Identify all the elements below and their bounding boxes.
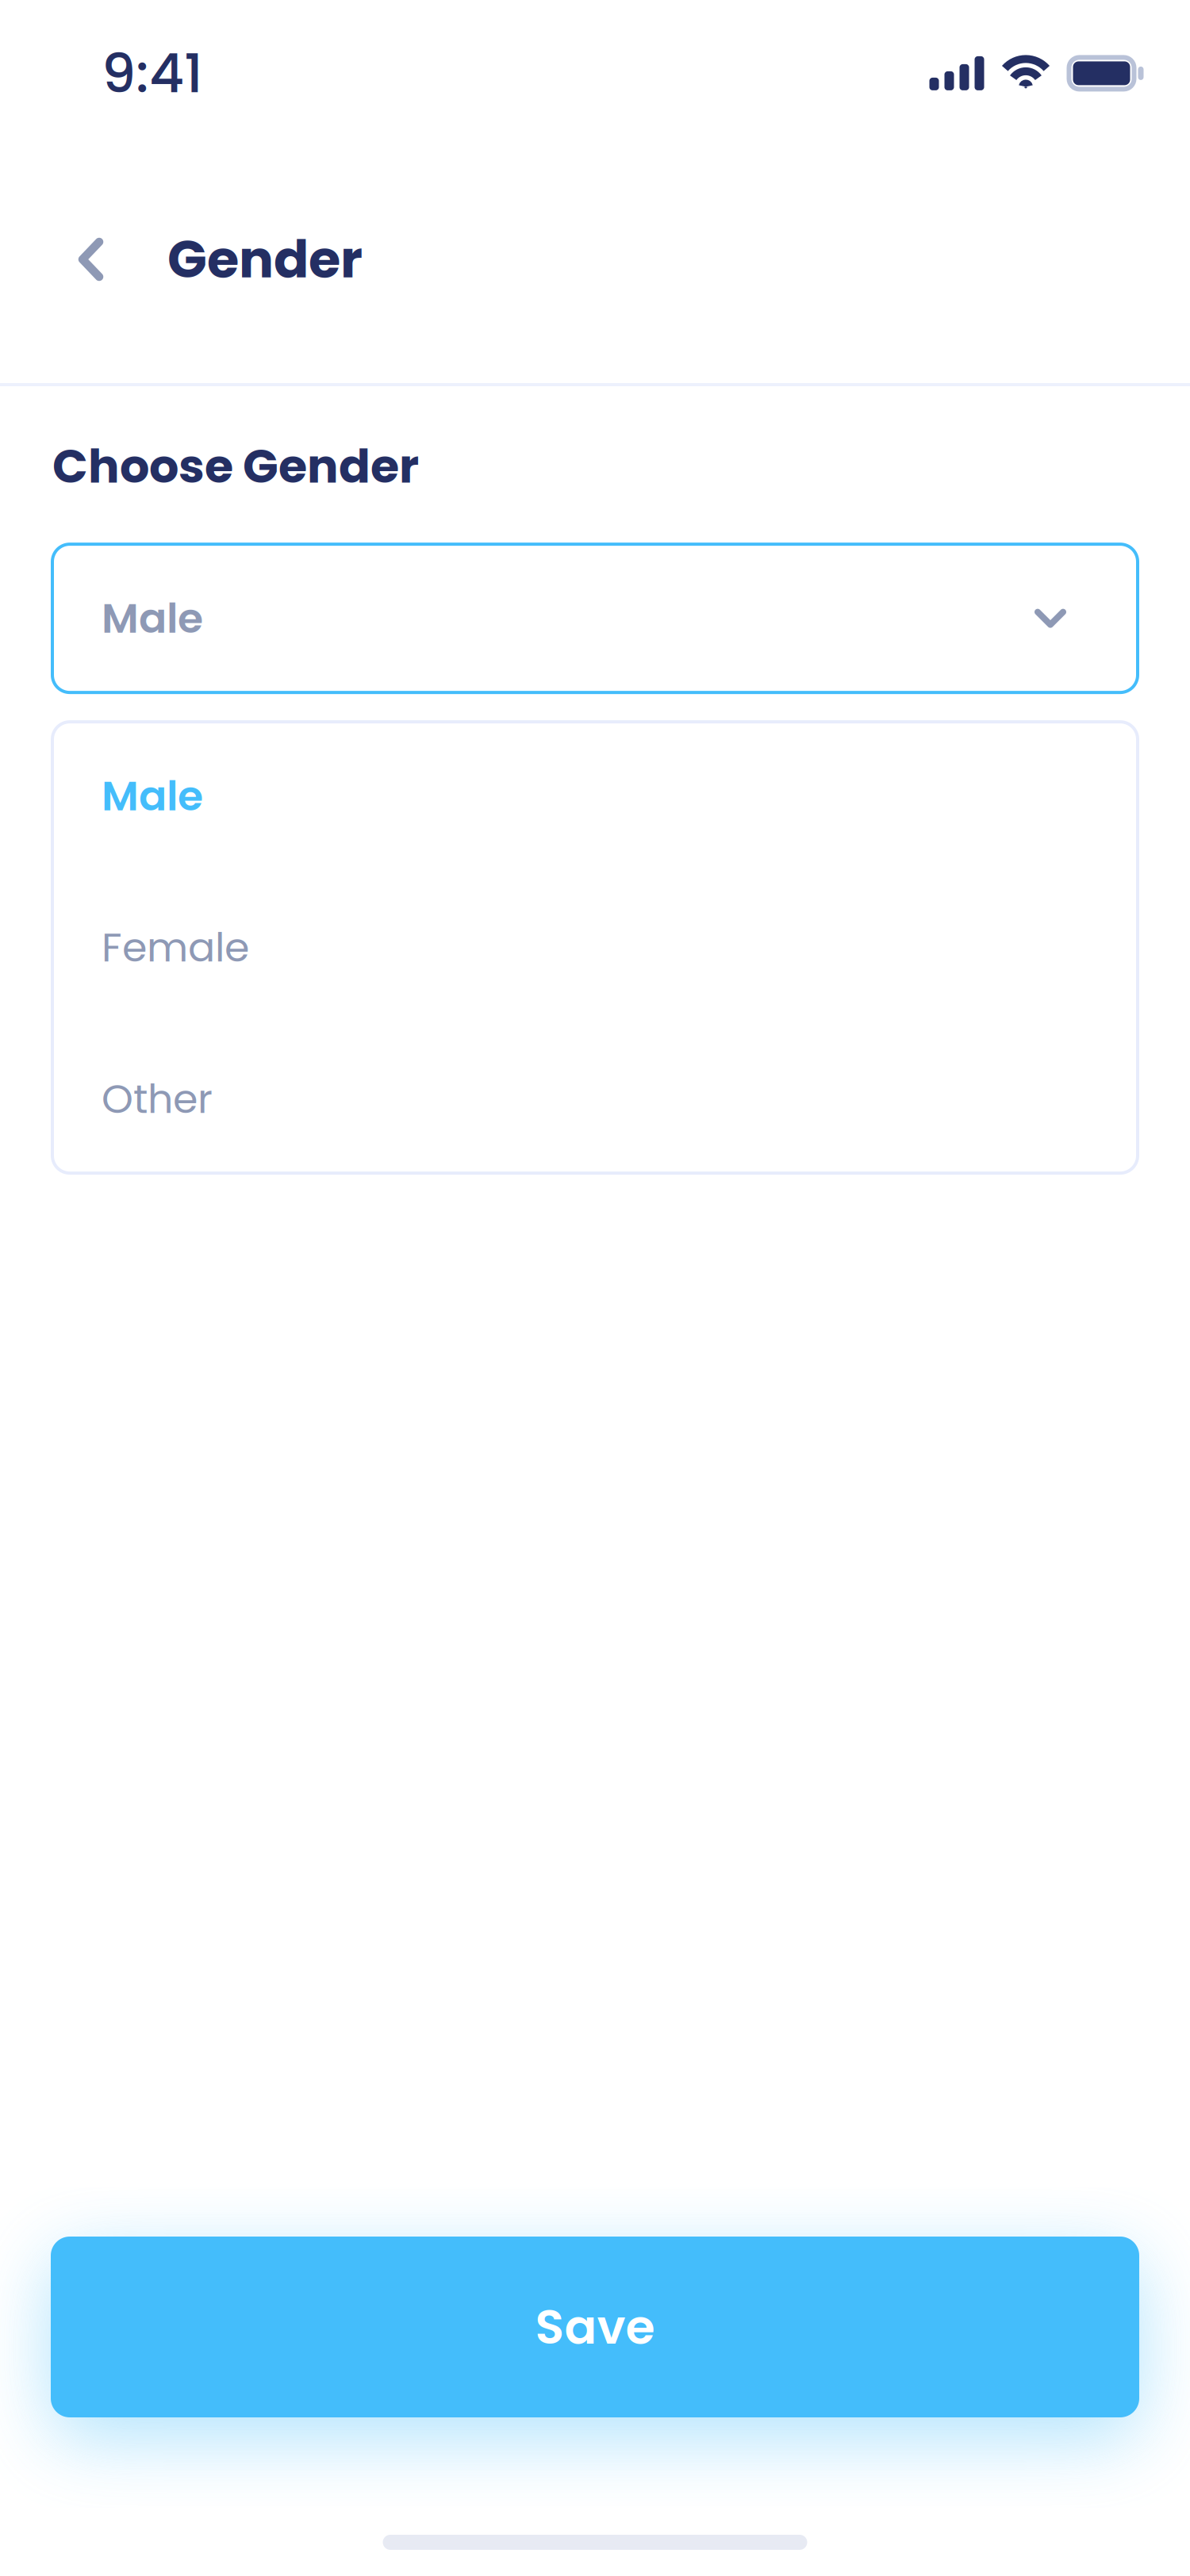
staticText: Gender: [167, 223, 363, 296]
staticText: Male: [102, 767, 203, 825]
button[interactable]: Male: [51, 720, 1139, 872]
button[interactable]: Save: [51, 2237, 1139, 2417]
button[interactable]: Other: [51, 1023, 1139, 1175]
staticText: Female: [102, 919, 249, 976]
staticText: 9:41: [102, 36, 203, 111]
button[interactable]: Male: [51, 543, 1139, 694]
staticText: Choose Gender: [52, 434, 419, 499]
staticText: Male: [102, 589, 203, 647]
staticText: Save: [535, 2294, 655, 2360]
button[interactable]: Back: [58, 217, 123, 302]
staticText: Other: [102, 1071, 213, 1127]
button[interactable]: Female: [51, 872, 1139, 1023]
